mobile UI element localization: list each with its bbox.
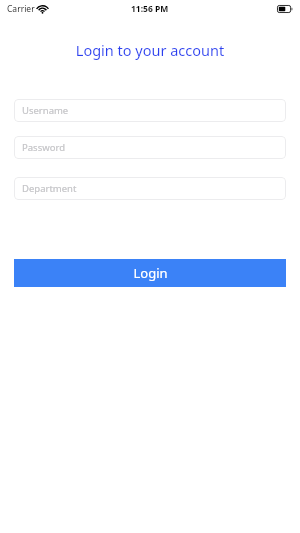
button[interactable]: Username (14, 99, 286, 122)
button[interactable]: Login (14, 259, 286, 287)
other: Battery level (277, 5, 293, 13)
button[interactable]: Password (14, 136, 286, 159)
staticText: Carrier (7, 3, 35, 15)
staticText: 11:56 PM (131, 3, 169, 15)
staticText: Department (22, 182, 77, 195)
staticText: Login to your account (0, 40, 300, 60)
other: Wi-Fi signal (38, 5, 47, 14)
staticText: Login (133, 264, 168, 282)
button[interactable]: Department (14, 177, 286, 200)
staticText: Username (22, 104, 69, 117)
staticText: Password (22, 141, 65, 154)
